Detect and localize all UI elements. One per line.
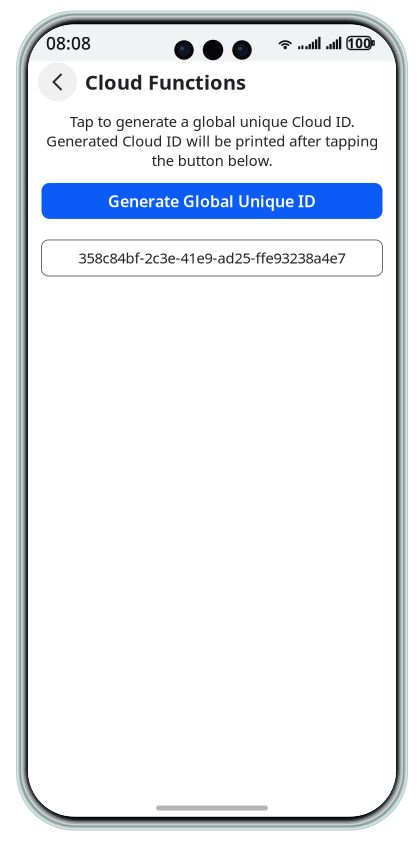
staticText: 100 — [347, 34, 371, 52]
staticText: Cloud Functions — [85, 69, 246, 95]
staticText: 358c84bf-2c3e-41e9-ad25-ffe93238a4e7 — [78, 248, 345, 268]
button[interactable]: Back — [38, 62, 77, 101]
staticText: 08:08 — [46, 31, 91, 54]
button[interactable]: Generate Global Unique ID — [41, 183, 382, 219]
staticText: Tap to generate a global unique Cloud ID… — [46, 111, 378, 170]
staticText: Generate Global Unique ID — [108, 190, 316, 211]
